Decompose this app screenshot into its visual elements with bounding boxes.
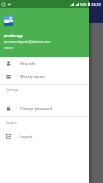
staticText: prueba app xyxy=(4,33,23,38)
staticText: 54% xyxy=(80,2,87,7)
staticText: System xyxy=(6,121,17,125)
staticText: Weekly report xyxy=(20,74,45,79)
staticText: Logout xyxy=(20,134,33,139)
button[interactable]: Weekly report xyxy=(0,70,89,83)
staticText: Ship info xyxy=(20,61,36,66)
button[interactable]: Logout xyxy=(0,130,89,143)
staticText: josemanuelgarcia@dominio.com xyxy=(4,40,51,44)
button[interactable]: Ship info xyxy=(0,57,89,70)
button[interactable]: Change password xyxy=(0,102,89,115)
staticText: 23:29 xyxy=(91,2,101,7)
staticText: asesor xyxy=(4,46,14,50)
staticText: Change password xyxy=(20,106,52,111)
staticText: Settings xyxy=(6,88,19,92)
